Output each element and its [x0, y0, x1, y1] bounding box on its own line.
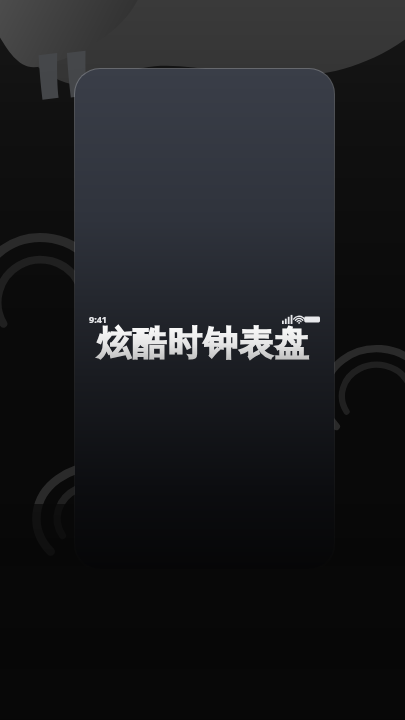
staticText: 炫酷时钟表盘: [96, 322, 309, 365]
staticText: 9:41: [89, 313, 107, 325]
